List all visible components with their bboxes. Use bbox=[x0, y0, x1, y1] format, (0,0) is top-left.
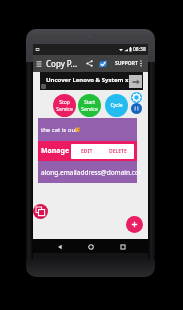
button[interactable]: Menu bbox=[34, 59, 43, 68]
button[interactable]: Cycle bbox=[105, 94, 128, 117]
button[interactable]: Home bbox=[85, 241, 96, 252]
button[interactable]: DELETE bbox=[102, 144, 134, 159]
button[interactable]: Share bbox=[85, 59, 94, 68]
button[interactable]: Settings bbox=[131, 92, 142, 103]
staticText: Manage bbox=[41, 146, 70, 156]
button[interactable]: Stop Service bbox=[53, 94, 76, 117]
button[interactable]: Add bbox=[126, 216, 143, 233]
staticText: Stop Service bbox=[56, 99, 73, 112]
staticText: Copy P... bbox=[46, 58, 78, 69]
staticText: Start Service bbox=[81, 99, 98, 112]
button[interactable]: Start Service bbox=[78, 94, 101, 117]
button[interactable]: More options bbox=[136, 59, 145, 68]
staticText: Cycle bbox=[110, 102, 123, 109]
button[interactable]: Open ad bbox=[129, 75, 142, 88]
button[interactable]: Sync bbox=[131, 103, 142, 114]
staticText: Uncover Lenovo & System x bbox=[46, 76, 129, 84]
button[interactable]: Copy bbox=[33, 204, 48, 219]
button[interactable]: Recents bbox=[117, 241, 128, 252]
staticText: 08:38 bbox=[133, 46, 146, 53]
button[interactable]: Verified bbox=[99, 60, 107, 68]
button[interactable]: Uncover Lenovo & System x bbox=[40, 72, 143, 90]
staticText: along.emailaddress@domain.com bbox=[41, 168, 140, 177]
staticText: the cat is out bbox=[41, 126, 78, 134]
button[interactable]: Back bbox=[54, 241, 65, 252]
staticText: DELETE bbox=[109, 148, 127, 155]
button[interactable]: EDIT bbox=[71, 144, 102, 159]
staticText: EDIT bbox=[81, 148, 93, 155]
staticText: SUPPORT bbox=[115, 60, 138, 67]
